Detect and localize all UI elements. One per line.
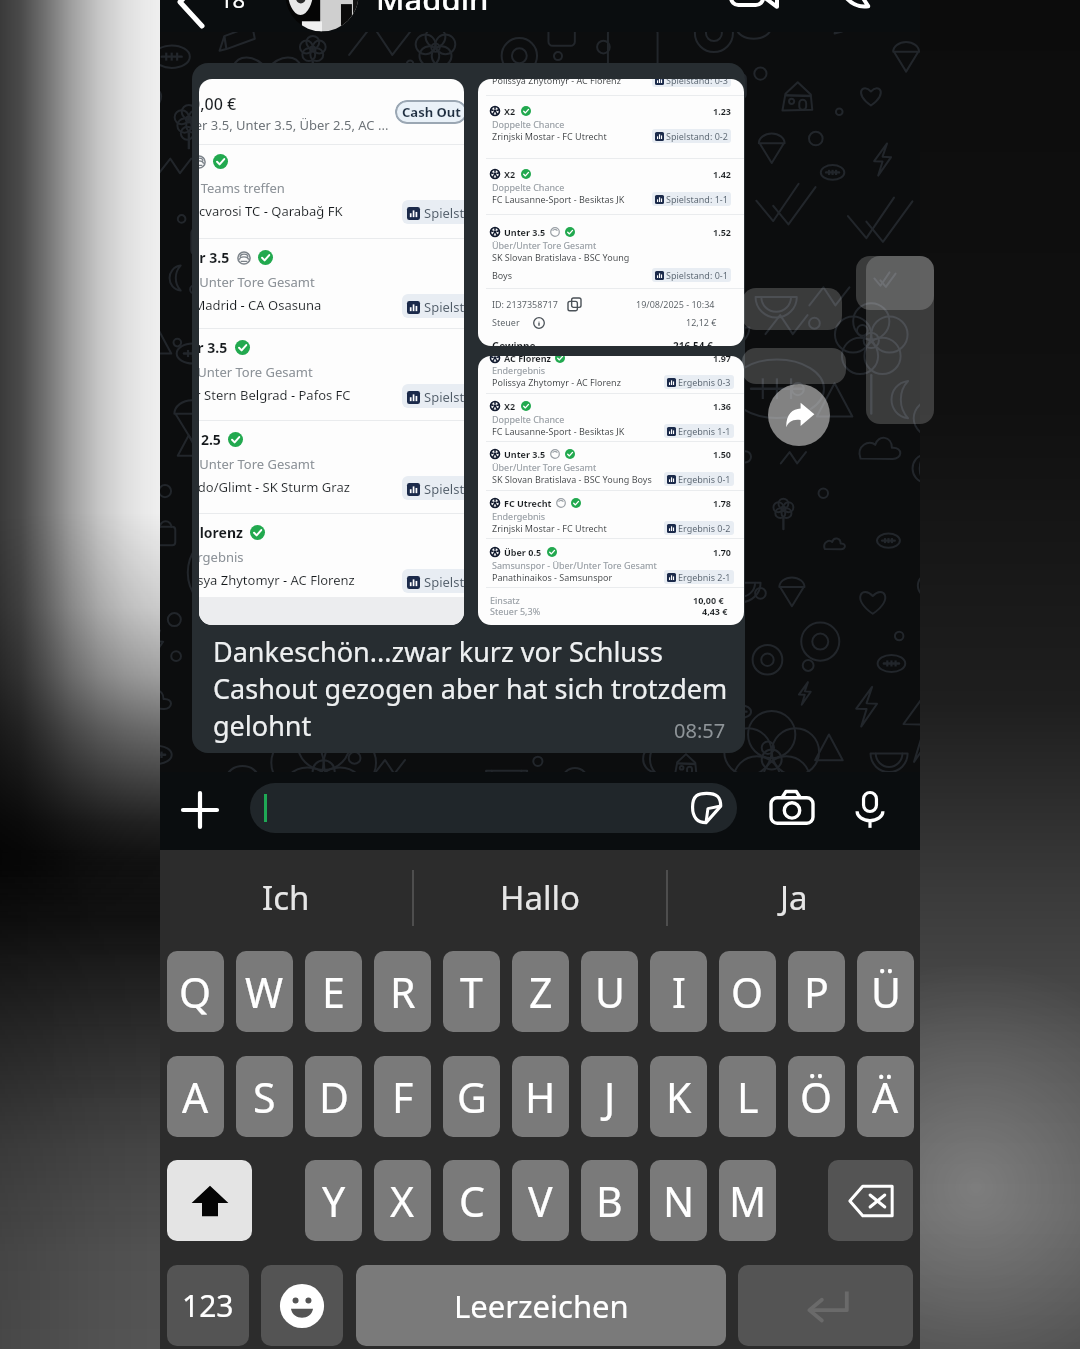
staticText: 12,12 €: [686, 316, 717, 328]
staticText: Q: [179, 964, 212, 1020]
staticText: Ä: [872, 1069, 899, 1125]
button[interactable]: Forward: [768, 384, 830, 446]
button[interactable]: X: [374, 1160, 431, 1241]
staticText: Ü: [871, 964, 901, 1020]
staticText: FC Utrecht: [504, 497, 552, 509]
staticText: Florenz: [199, 523, 243, 542]
staticText: Boys: [492, 269, 513, 281]
button[interactable]: J: [581, 1056, 638, 1137]
staticText: AC Florenz: [504, 356, 551, 364]
button[interactable]: V: [512, 1160, 569, 1241]
staticText: odo/Glimt - SK Sturm Graz: [199, 478, 350, 496]
staticText: Endergebnis: [492, 364, 546, 376]
staticText: er 3.5: [199, 338, 228, 357]
staticText: Ergebnis 0-1: [678, 473, 731, 485]
staticText: e Teams treffen: [199, 179, 285, 197]
staticText: X2: [504, 168, 516, 180]
staticText: r/Unter Tore Gesamt: [199, 273, 315, 291]
button[interactable]: Cash Out: [395, 100, 464, 124]
staticText: Unter 3.5: [504, 226, 546, 238]
button[interactable]: Camera: [760, 778, 824, 842]
button[interactable]: Z: [512, 951, 569, 1032]
button[interactable]: T: [443, 951, 500, 1032]
button[interactable]: I: [650, 951, 707, 1032]
button[interactable]: Q: [167, 951, 224, 1032]
staticText: Zrinjski Mostar - FC Utrecht: [492, 130, 607, 142]
staticText: FC Lausanne-Sport - Besiktas JK: [492, 193, 625, 205]
staticText: 1.97: [713, 356, 731, 364]
button[interactable]: A: [167, 1056, 224, 1137]
button[interactable]: Backspace: [828, 1160, 913, 1241]
button[interactable]: Sticker: [250, 783, 737, 833]
staticText: Ergebnis 1-1: [678, 425, 731, 437]
staticText: Maddin: [376, 0, 489, 10]
button[interactable]: Ä: [857, 1056, 914, 1137]
staticText: Ergebnis 0-2: [678, 522, 731, 534]
button[interactable]: P: [788, 951, 845, 1032]
staticText: X: [390, 1173, 415, 1229]
staticText: Über/Unter Tore Gesamt: [492, 239, 597, 251]
staticText: 10,00 €: [693, 594, 724, 606]
button[interactable]: C: [443, 1160, 500, 1241]
button[interactable]: L: [719, 1056, 776, 1137]
button[interactable]: G: [443, 1056, 500, 1137]
button[interactable]: Shift: [167, 1160, 252, 1241]
button[interactable]: Attach: [168, 778, 232, 842]
staticText: Spielstan: [424, 480, 464, 498]
staticText: 216,54 €: [673, 339, 713, 346]
staticText: T: [460, 964, 483, 1020]
staticText: Steuer: [492, 316, 520, 328]
staticText: Unter 3.5: [504, 448, 546, 460]
button[interactable]: Video call: [720, 0, 790, 32]
button[interactable]: Ja: [668, 850, 920, 945]
button[interactable]: Leerzeichen: [356, 1265, 726, 1346]
staticText: K: [666, 1069, 692, 1125]
button[interactable]: Voice message: [838, 778, 902, 842]
staticText: Einsatz: [490, 594, 520, 606]
staticText: Ergebnis 2-1: [678, 571, 731, 583]
button[interactable]: Sticker: [686, 788, 726, 828]
button[interactable]: Ich: [160, 850, 412, 945]
button[interactable]: D: [305, 1056, 362, 1137]
button[interactable]: Voice call: [820, 0, 886, 32]
staticText: Doppelte Chance: [492, 118, 565, 130]
staticText: F: [392, 1069, 414, 1125]
button[interactable]: 0,00 €: [192, 63, 745, 753]
button[interactable]: F: [374, 1056, 431, 1137]
staticText: er Stern Belgrad - Pafos FC: [199, 386, 351, 404]
button[interactable]: Enter: [738, 1265, 913, 1346]
button[interactable]: U: [581, 951, 638, 1032]
button[interactable]: Y: [305, 1160, 362, 1241]
button[interactable]: S: [236, 1056, 293, 1137]
staticText: M: [729, 1173, 767, 1229]
staticText: Cash Out: [402, 103, 461, 121]
staticText: X2: [504, 400, 516, 412]
button[interactable]: R: [374, 951, 431, 1032]
staticText: Spielstan: [424, 388, 464, 406]
staticText: Doppelte Chance: [492, 413, 565, 425]
staticText: ter 3.5, Unter 3.5, Über 2.5, AC ...: [199, 116, 389, 134]
button[interactable]: H: [512, 1056, 569, 1137]
button[interactable]: O: [719, 951, 776, 1032]
button[interactable]: 123: [167, 1265, 249, 1346]
button[interactable]: B: [581, 1160, 638, 1241]
button[interactable]: M: [719, 1160, 776, 1241]
button[interactable]: E: [305, 951, 362, 1032]
button[interactable]: Ü: [857, 951, 914, 1032]
staticText: Madrid - CA Osasuna: [199, 296, 322, 314]
button[interactable]: Emoji: [261, 1265, 343, 1346]
staticText: L: [737, 1069, 759, 1125]
staticText: P: [804, 964, 829, 1020]
staticText: Panathinaikos - Samsunspor: [492, 571, 613, 583]
button[interactable]: W: [236, 951, 293, 1032]
staticText: W: [245, 964, 284, 1020]
staticText: Spielstan: [424, 573, 464, 591]
staticText: ID: 2137358717: [492, 298, 558, 310]
staticText: ncvarosi TC - Qarabağ FK: [199, 202, 343, 220]
staticText: N: [663, 1173, 695, 1229]
button[interactable]: Ö: [788, 1056, 845, 1137]
button[interactable]: K: [650, 1056, 707, 1137]
staticText: Ergebnis 0-3: [678, 376, 731, 388]
button[interactable]: Hallo: [414, 850, 666, 945]
button[interactable]: N: [650, 1160, 707, 1241]
